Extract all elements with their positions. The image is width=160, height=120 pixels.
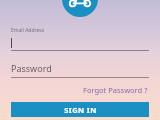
staticText: Email Address [11,27,45,34]
other: App logo [62,0,98,17]
button[interactable]: SIGN IN [11,102,149,117]
staticText: Forgot Password ? [83,85,148,95]
staticText: Password [11,62,52,74]
button[interactable]: Forgot Password ? [82,84,149,96]
staticText: SIGN IN [64,105,97,115]
button[interactable]: Email Address [11,27,149,51]
button[interactable]: Password [11,62,149,78]
